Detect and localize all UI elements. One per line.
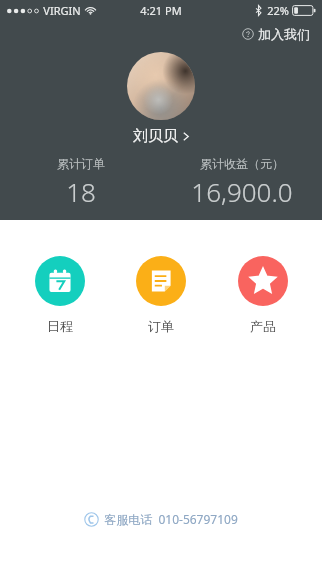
staticText: 累计订单 (57, 156, 105, 171)
staticText: VIRGIN (43, 3, 81, 18)
staticText: 客服电话 010-56797109 (104, 511, 238, 527)
button[interactable]: 客服电话 010-56797109 (80, 508, 242, 530)
staticText: 订单 (148, 318, 174, 334)
staticText: 产品 (250, 318, 276, 334)
button[interactable]: 累计收益（元） (161, 156, 322, 209)
staticText: 22% (267, 3, 289, 18)
button[interactable]: Products (221, 254, 305, 336)
button[interactable]: Schedule (18, 254, 102, 336)
staticText: 日程 (47, 318, 73, 334)
staticText: 18 (66, 174, 96, 209)
staticText: 加入我们 (258, 26, 310, 42)
staticText: 累计收益（元） (200, 156, 284, 171)
staticText: 16,900.0 (191, 174, 293, 209)
button[interactable]: 累计订单 (0, 156, 161, 209)
staticText: 4:21 PM (140, 3, 182, 18)
staticText: 刘贝贝 (133, 127, 178, 146)
button[interactable]: Orders (119, 254, 203, 336)
button[interactable]: 刘贝贝 (129, 126, 194, 147)
button[interactable]: 加入我们 (240, 24, 312, 44)
button[interactable]: Profile photo (127, 52, 195, 120)
